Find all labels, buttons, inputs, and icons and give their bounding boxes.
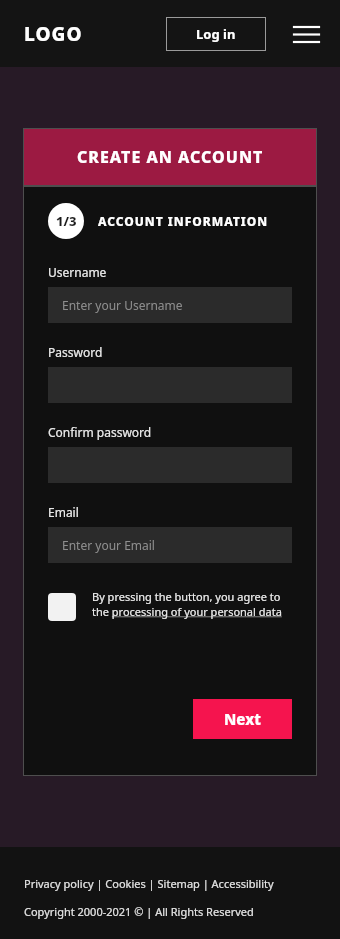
staticText: Privacy policy | Cookies | Sitemap | Acc…: [24, 876, 274, 891]
staticText: Enter your Username: [62, 297, 183, 313]
button[interactable]: Enter your Username: [48, 287, 292, 323]
staticText: ACCOUNT INFORMATION: [98, 213, 269, 229]
staticText: 1/3: [56, 212, 77, 230]
staticText: LOGO: [24, 21, 83, 47]
staticText: Email: [48, 504, 79, 520]
button[interactable]: By pressing the button, you agree to the…: [48, 589, 292, 621]
staticText: Confirm password: [48, 424, 152, 440]
staticText: Copyright 2000-2021 © | All Rights Reser…: [24, 904, 254, 919]
staticText: Enter your Email: [62, 537, 155, 553]
staticText: Next: [224, 709, 261, 729]
button[interactable]: Menu: [288, 16, 324, 52]
button[interactable]: CREATE AN ACCOUNT: [23, 128, 317, 186]
button[interactable]: Next: [193, 699, 292, 739]
button[interactable]: Enter your Email: [48, 527, 292, 563]
staticText: Password: [48, 344, 103, 360]
staticText: Username: [48, 264, 107, 280]
button[interactable]: Log in: [166, 17, 266, 51]
staticText: Log in: [196, 25, 236, 43]
staticText: CREATE AN ACCOUNT: [77, 146, 264, 168]
staticText: By pressing the button, you agree to the…: [92, 589, 292, 619]
